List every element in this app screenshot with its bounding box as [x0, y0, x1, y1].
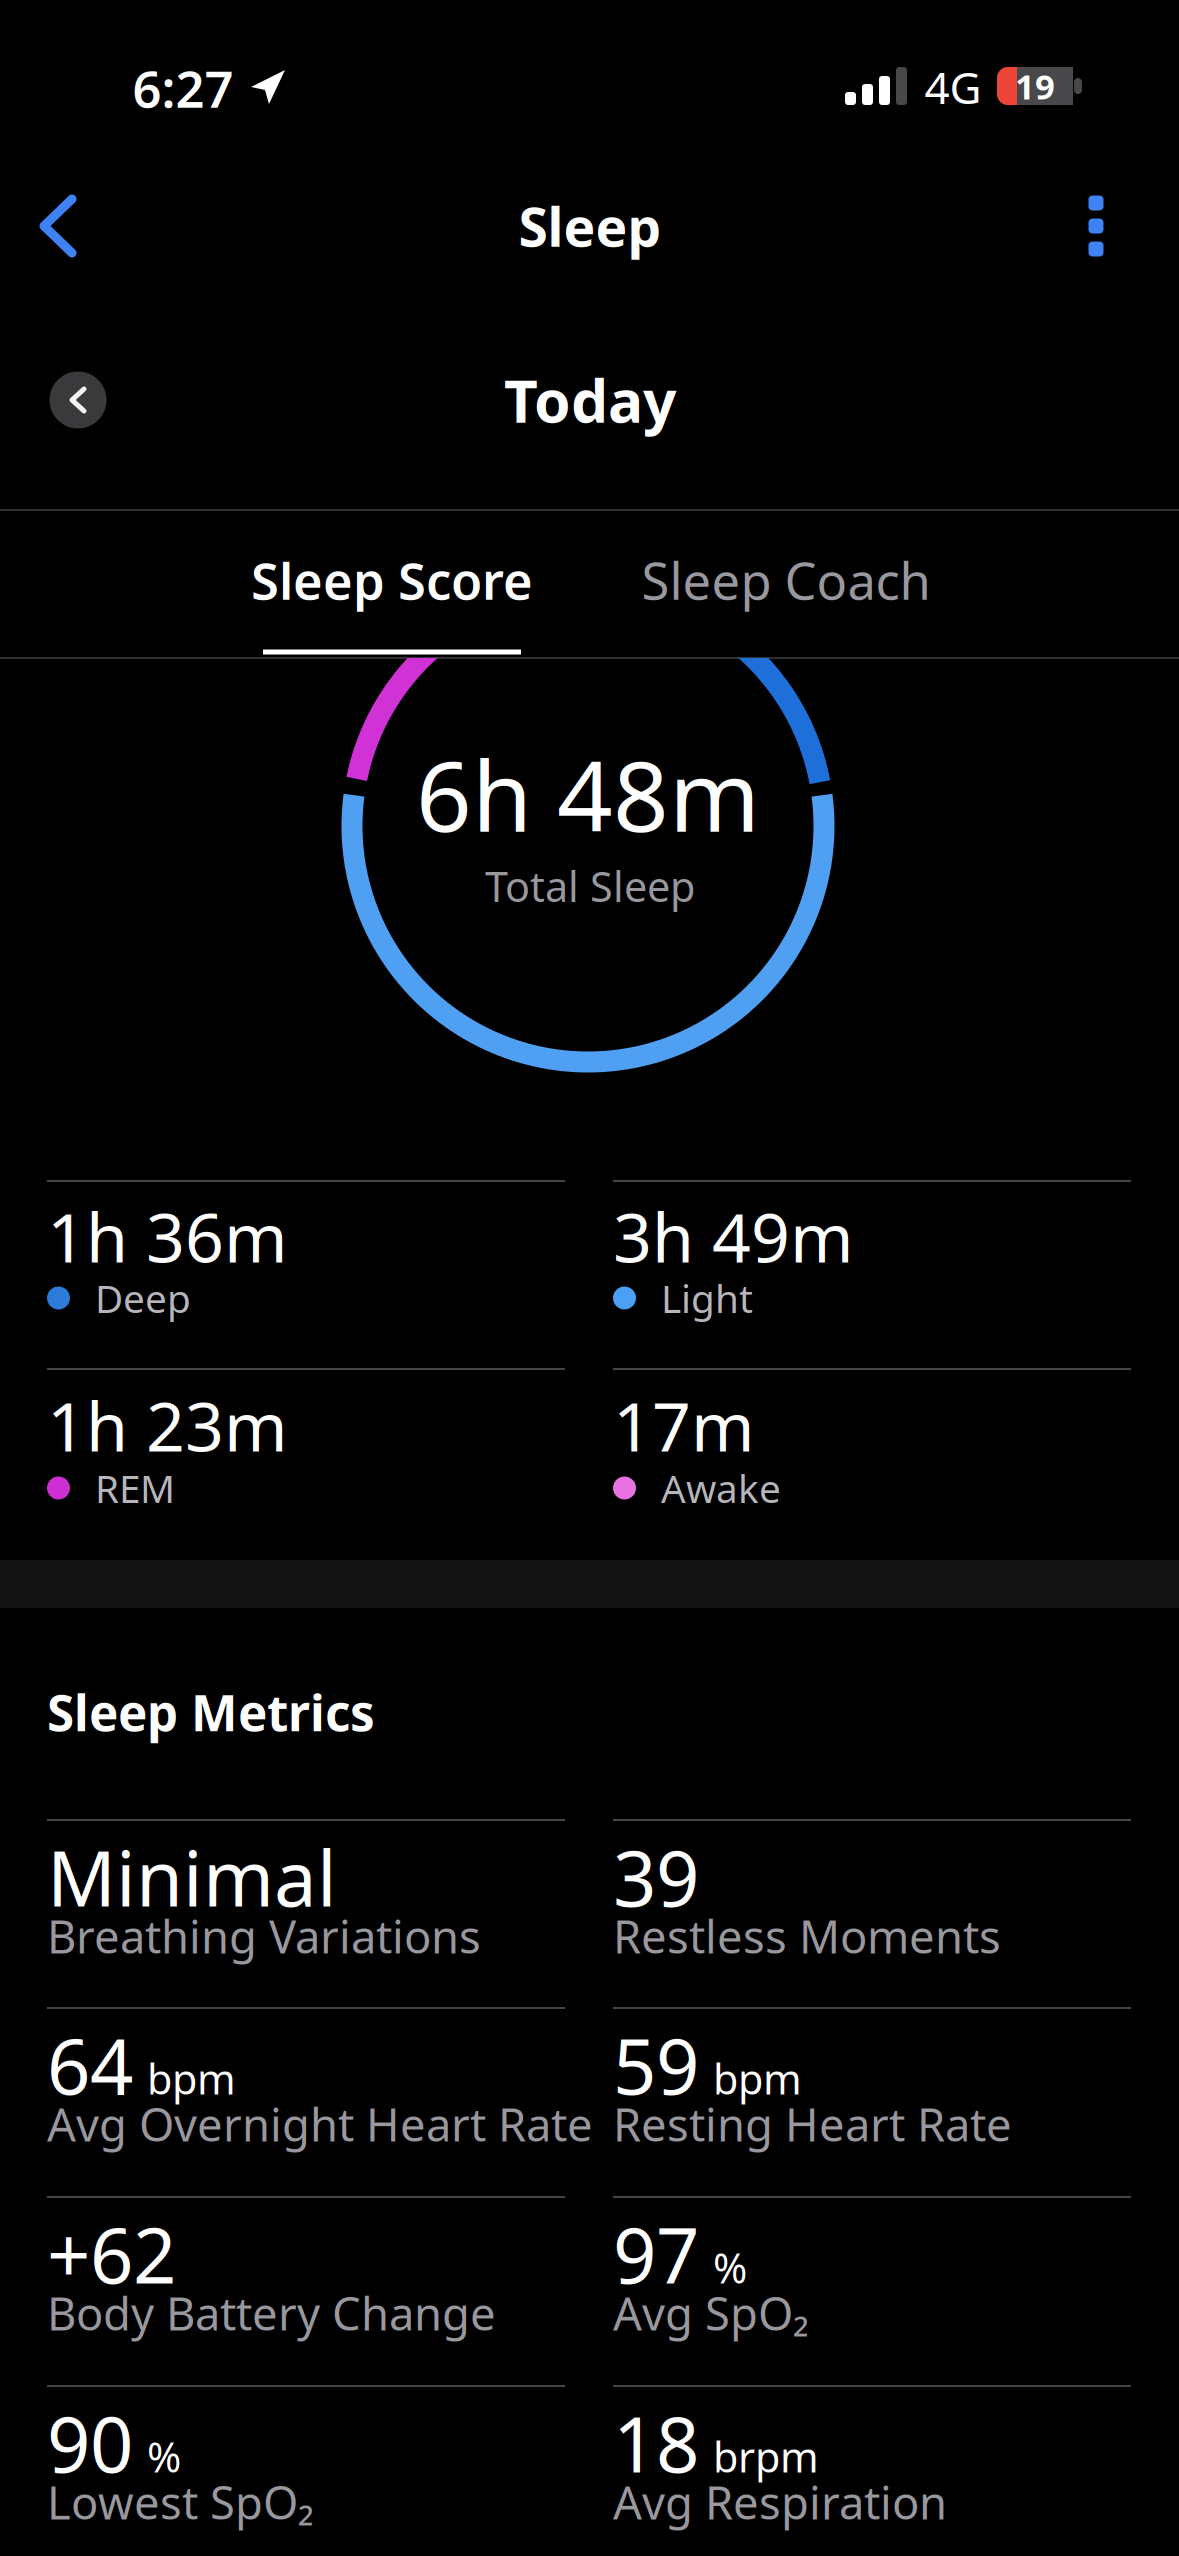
button[interactable]: Sleep Coach	[641, 546, 930, 614]
staticText: Deep	[95, 1272, 191, 1324]
staticText: brpm	[713, 2429, 819, 2484]
staticText: 19	[1015, 63, 1055, 109]
staticText: Body Battery Change	[47, 2283, 496, 2343]
staticText: Light	[661, 1272, 753, 1324]
staticText: 64	[47, 2014, 133, 2115]
staticText: 59	[613, 2014, 699, 2115]
staticText: Breathing Variations	[47, 1906, 481, 1966]
staticText: Resting Heart Rate	[613, 2094, 1012, 2154]
staticText: 97	[613, 2203, 699, 2304]
staticText: bpm	[713, 2051, 802, 2106]
button[interactable]	[1088, 195, 1103, 256]
staticText: Avg Overnight Heart Rate	[47, 2094, 593, 2154]
staticText: 6h 48m	[416, 729, 760, 859]
staticText: 3h 49m	[613, 1191, 854, 1281]
staticText: 4G	[924, 58, 981, 116]
staticText: REM	[95, 1462, 175, 1514]
staticText: 1h 23m	[47, 1380, 288, 1470]
staticText: %	[147, 2429, 181, 2484]
staticText: Lowest SpO₂	[47, 2472, 314, 2532]
staticText: Avg Respiration	[613, 2472, 947, 2532]
staticText: 17m	[613, 1380, 755, 1470]
staticText: 6:27	[132, 54, 233, 122]
button[interactable]	[49, 371, 106, 428]
staticText: 90	[47, 2392, 133, 2493]
staticText: Minimal	[47, 1826, 337, 1927]
staticText: 39	[613, 1826, 699, 1927]
staticText: Restless Moments	[613, 1906, 1001, 1966]
staticText: Awake	[661, 1462, 781, 1514]
button[interactable]	[38, 195, 82, 257]
staticText: Avg SpO₂	[613, 2283, 809, 2343]
staticText: bpm	[147, 2051, 236, 2106]
staticText: Today	[504, 361, 676, 439]
staticText: Total Sleep	[485, 859, 695, 913]
staticText: Sleep Score	[251, 546, 533, 614]
staticText: %	[713, 2240, 747, 2295]
staticText: 18	[613, 2392, 699, 2493]
button[interactable]: Sleep Score	[251, 546, 533, 614]
staticText: Sleep	[518, 191, 661, 261]
staticText: 1h 36m	[47, 1191, 288, 1281]
staticText: Sleep Metrics	[47, 1679, 375, 1745]
staticText: +62	[47, 2203, 176, 2304]
staticText: Sleep Coach	[641, 546, 930, 614]
